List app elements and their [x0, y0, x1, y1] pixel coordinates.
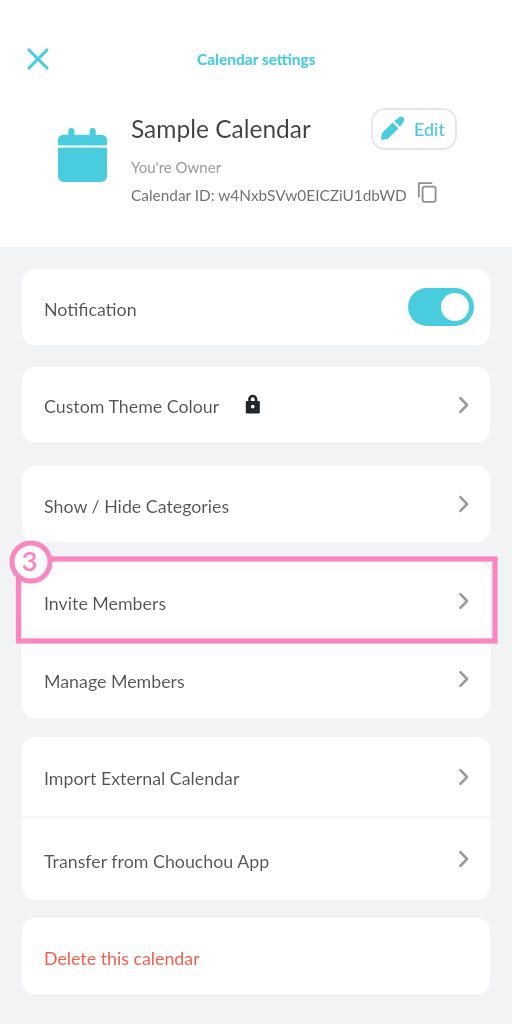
staticText: 3 — [19, 544, 40, 576]
button[interactable]: Custom Theme Colour — [22, 367, 490, 442]
button[interactable]: Invite Members — [22, 562, 490, 640]
staticText: Import External Calendar — [44, 767, 240, 788]
staticText: Manage Members — [44, 670, 185, 691]
button[interactable]: Show / Hide Categories — [22, 466, 490, 542]
button[interactable]: Notification — [22, 269, 490, 345]
button[interactable]: Import External Calendar — [22, 737, 490, 816]
button[interactable]: Delete this calendar — [22, 918, 490, 994]
staticText: Calendar ID: w4NxbSVw0EICZiU1dbWD — [131, 186, 407, 204]
button[interactable]: Transfer from Chouchou App — [22, 818, 490, 900]
button[interactable]: Edit — [371, 108, 457, 150]
button[interactable]: Copy calendar ID — [418, 182, 440, 204]
staticText: Notification — [44, 298, 137, 319]
staticText: Custom Theme Colour — [44, 395, 220, 416]
staticText: Show / Hide Categories — [44, 495, 230, 516]
staticText: You're Owner — [131, 158, 222, 176]
staticText: Edit — [414, 118, 445, 140]
button[interactable]: Close — [20, 40, 60, 80]
staticText: Calendar settings — [197, 50, 316, 69]
button[interactable]: Manage Members — [22, 640, 490, 718]
staticText: Sample Calendar — [131, 114, 311, 143]
staticText: Transfer from Chouchou App — [44, 850, 270, 871]
staticText: Invite Members — [44, 592, 167, 613]
staticText: Delete this calendar — [44, 947, 200, 968]
button[interactable]: Notification toggle, on — [408, 288, 474, 326]
